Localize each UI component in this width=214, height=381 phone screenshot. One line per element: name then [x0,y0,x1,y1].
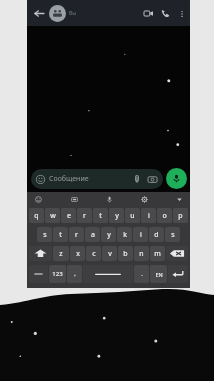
staticText: y [115,211,119,221]
staticText: s [171,230,175,240]
staticText: r [83,211,86,221]
button[interactable]: d [149,227,164,242]
button[interactable]: i [141,208,156,223]
staticText: b [123,249,128,259]
button[interactable]: Attach [131,173,143,185]
button[interactable]: Emoji [32,193,44,205]
staticText: w [50,211,56,221]
button[interactable]: w [45,208,60,223]
button[interactable]: z [53,246,69,261]
button[interactable]: Stickers [68,193,80,205]
button[interactable]: p [173,208,188,223]
button[interactable]: Shift [29,246,52,261]
button[interactable]: Enter [168,265,188,283]
staticText: m [154,249,161,259]
button[interactable]: k [117,227,132,242]
button[interactable]: a [85,227,100,242]
staticText: i [148,211,150,221]
button[interactable]: q [29,208,44,223]
staticText: Сообщение [49,174,89,184]
staticText: x [76,249,80,259]
staticText: , [74,270,76,278]
button[interactable]: o [157,208,172,223]
staticText: e [67,211,71,221]
button[interactable]: s [37,227,52,242]
button[interactable]: More options [174,6,189,21]
button[interactable]: Call [157,5,174,22]
button[interactable]: Сообщение [31,169,163,189]
staticText: y [107,230,111,240]
button[interactable]: y [101,227,116,242]
button[interactable]: i [133,227,148,242]
button[interactable]: EN [150,265,167,283]
staticText: z [59,249,63,259]
button[interactable]: u [125,208,140,223]
button[interactable]: Switch language [29,265,48,283]
button[interactable]: Backspace [166,246,188,261]
button[interactable]: Back [31,5,47,21]
button[interactable]: . [134,265,149,283]
button[interactable]: b [118,246,133,261]
staticText: p [178,211,183,221]
staticText: . [141,270,143,278]
staticText: o [162,211,167,221]
staticText: s [43,230,47,240]
staticText: r [75,230,78,240]
staticText: u [130,211,135,221]
staticText: t [59,230,62,240]
staticText: k [123,230,127,240]
button[interactable]: s [165,227,180,242]
button[interactable]: Voice input [103,193,115,205]
button[interactable]: , [67,265,82,283]
staticText: Вы [69,10,77,17]
button[interactable]: Video call [140,5,157,22]
staticText: d [154,230,159,240]
staticText: n [139,249,144,259]
button[interactable]: Вы [49,5,79,22]
button[interactable]: t [93,208,108,223]
staticText: q [34,211,39,221]
button[interactable]: r [77,208,92,223]
staticText: v [108,249,112,259]
button[interactable]: Record voice message [166,168,187,189]
button[interactable]: Camera [146,173,158,185]
button[interactable]: n [134,246,149,261]
button[interactable]: y [109,208,124,223]
button[interactable]: 123 [49,265,66,283]
button[interactable]: Collapse [173,193,185,205]
button[interactable]: Keyboard settings [138,193,150,205]
button[interactable]: t [53,227,68,242]
staticText: t [99,211,102,221]
staticText: a [91,230,95,240]
staticText: c [92,249,96,259]
button[interactable]: r [69,227,84,242]
button[interactable]: x [70,246,85,261]
button[interactable]: v [102,246,117,261]
button[interactable]: m [150,246,165,261]
button[interactable]: c [86,246,101,261]
button[interactable]: Space [83,265,133,283]
staticText: 123 [52,270,63,278]
staticText: EN [155,271,163,278]
staticText: i [140,230,142,240]
button[interactable]: e [61,208,76,223]
